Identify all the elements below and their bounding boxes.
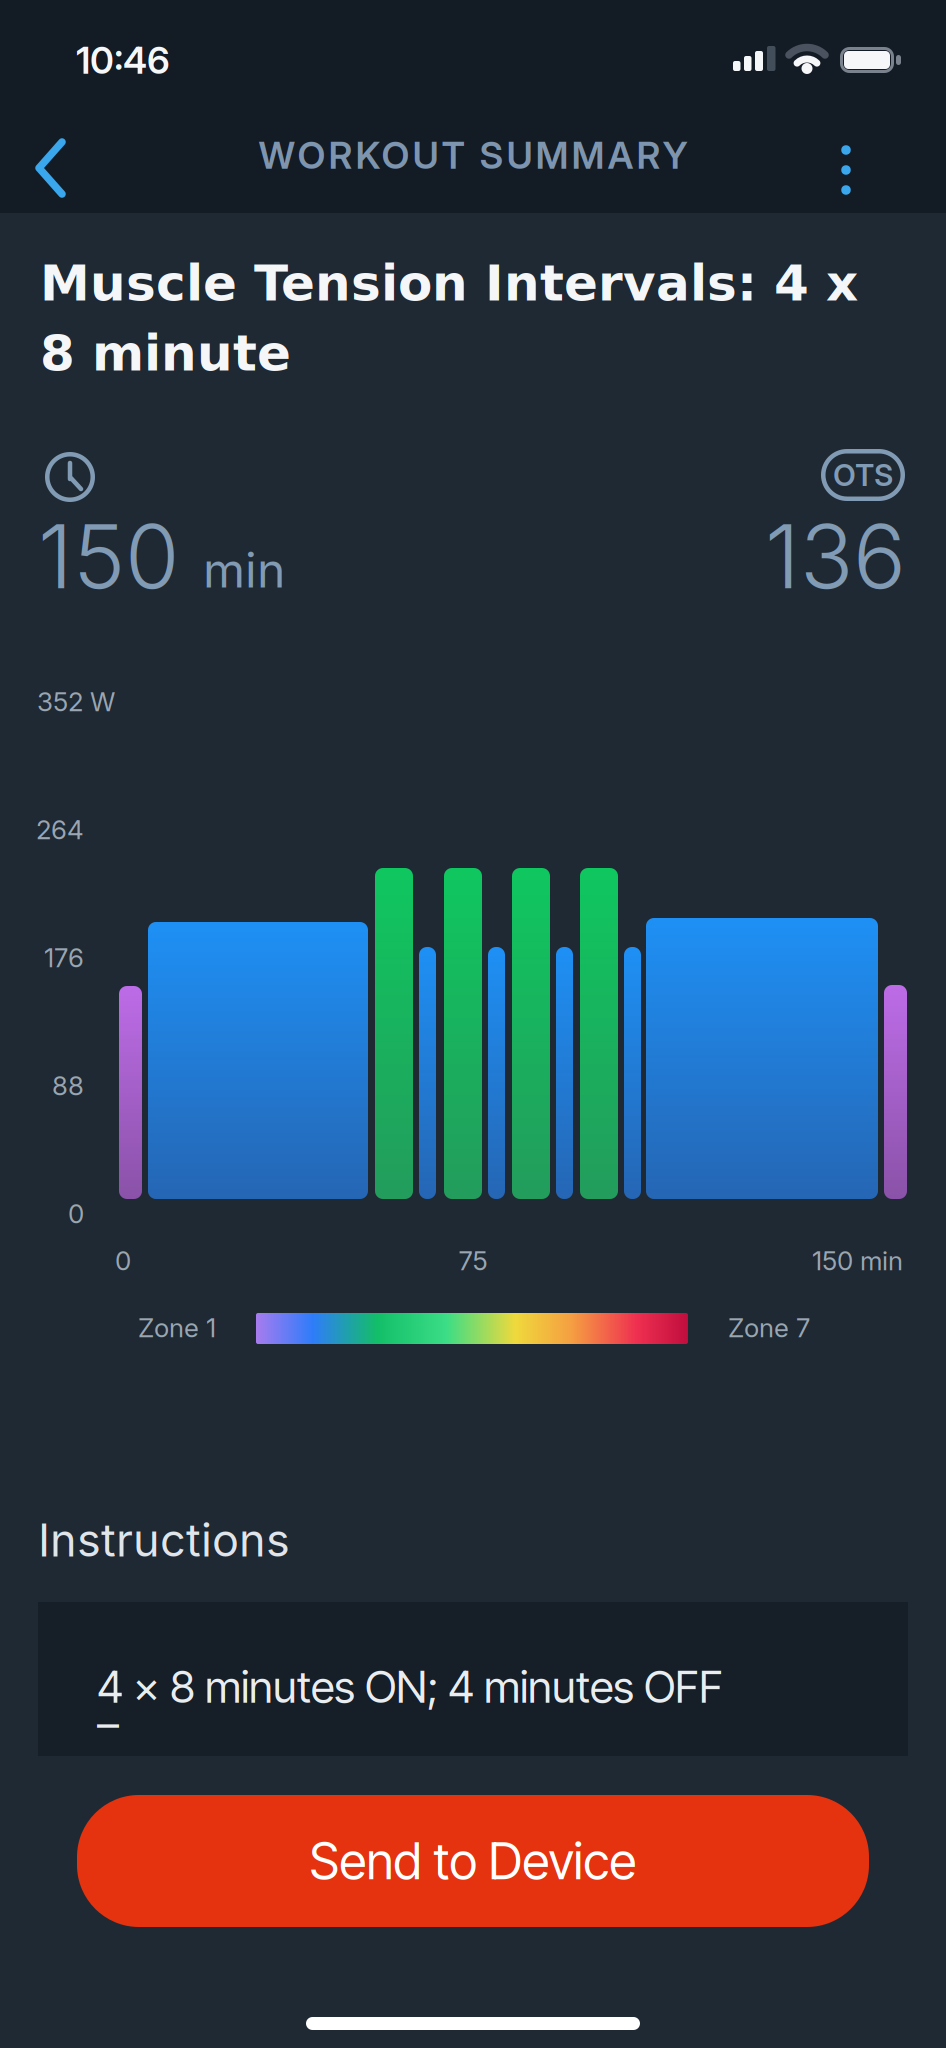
staticText: 88 bbox=[52, 1070, 84, 1101]
staticText: Send to Device bbox=[309, 1831, 636, 1891]
staticText: 4 x 8 minutes ON; 4 minutes OFF bbox=[97, 1660, 723, 1713]
staticText: 0 bbox=[115, 1245, 131, 1276]
staticText: Zone 7 bbox=[728, 1312, 810, 1343]
staticText: Zone 1 bbox=[138, 1312, 216, 1343]
staticText: 352 W bbox=[37, 686, 115, 717]
staticText: 264 bbox=[36, 814, 84, 845]
staticText: Muscle Tension Intervals: 4 x bbox=[40, 254, 858, 312]
staticText: 150 min bbox=[812, 1245, 903, 1276]
button[interactable] bbox=[824, 135, 868, 205]
staticText: OTS bbox=[833, 457, 893, 493]
staticText: – bbox=[97, 1697, 119, 1750]
staticText: min bbox=[203, 541, 285, 599]
staticText: 136 bbox=[765, 503, 906, 609]
button[interactable] bbox=[28, 137, 72, 199]
staticText: 0 bbox=[68, 1198, 84, 1229]
staticText: 75 bbox=[458, 1245, 487, 1276]
staticText: 10:46 bbox=[76, 38, 170, 83]
button[interactable]: Send to Device bbox=[77, 1795, 869, 1927]
staticText: 176 bbox=[44, 942, 84, 973]
staticText: WORKOUT SUMMARY bbox=[258, 133, 687, 178]
staticText: 8 minute bbox=[40, 324, 291, 382]
staticText: 150 bbox=[38, 503, 179, 609]
staticText: Instructions bbox=[38, 1513, 290, 1567]
